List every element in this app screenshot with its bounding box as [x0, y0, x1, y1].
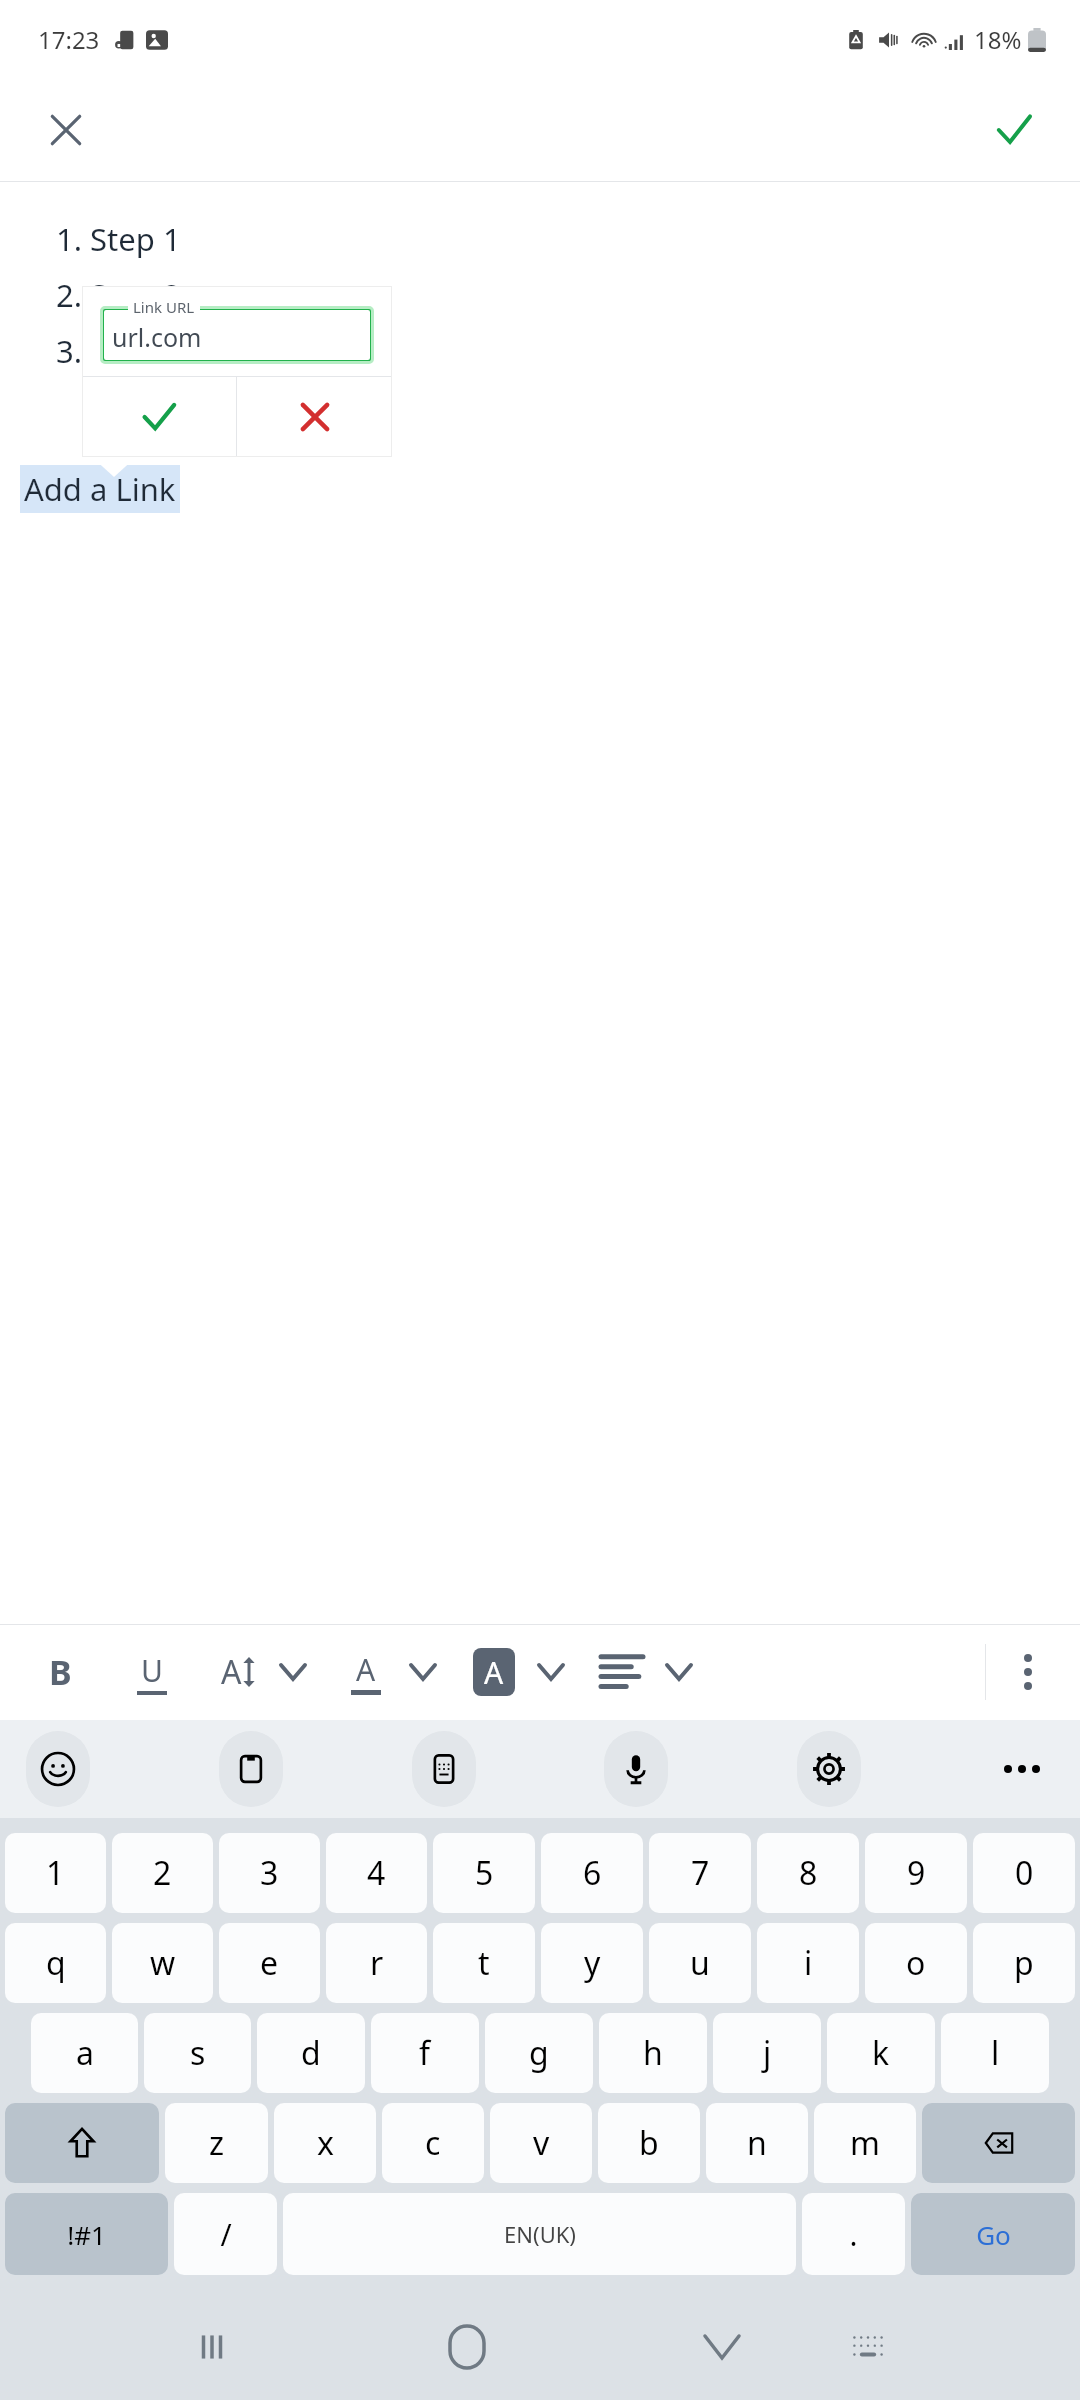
staticText: j — [763, 2031, 772, 2075]
staticText: 2 — [153, 1851, 172, 1895]
staticText: U — [141, 1650, 163, 1691]
button[interactable]: a — [31, 2013, 138, 2093]
staticText: EN(UK) — [504, 2219, 576, 2249]
button[interactable]: 3 — [219, 1833, 320, 1913]
button[interactable]: Keyboard settings — [797, 1731, 861, 1807]
button[interactable]: Expand — [534, 1642, 568, 1702]
staticText: 8 — [799, 1851, 818, 1895]
staticText: u — [690, 1941, 710, 1985]
button[interactable]: w — [112, 1923, 213, 2003]
button[interactable]: Shift — [5, 2103, 159, 2183]
button[interactable]: s — [144, 2013, 251, 2093]
button[interactable]: Underline — [126, 1637, 178, 1707]
button[interactable]: Keyboard modes — [412, 1731, 476, 1807]
button[interactable]: e — [219, 1923, 320, 2003]
staticText: s — [190, 2031, 206, 2075]
button[interactable]: 4 — [326, 1833, 427, 1913]
button[interactable]: More — [990, 1737, 1054, 1801]
button[interactable]: p — [973, 1923, 1075, 2003]
button[interactable]: 1 — [5, 1833, 106, 1913]
button[interactable]: o — [865, 1923, 967, 2003]
button[interactable]: r — [326, 1923, 427, 2003]
button[interactable]: url.com — [102, 308, 372, 362]
button[interactable]: More options — [998, 1642, 1058, 1702]
button[interactable]: c — [382, 2103, 484, 2183]
button[interactable]: Recents — [172, 2307, 252, 2387]
staticText: p — [1014, 1941, 1034, 1985]
button[interactable]: Backspace — [922, 2103, 1075, 2183]
button[interactable]: Hide keyboard — [682, 2307, 762, 2387]
button[interactable]: y — [541, 1923, 643, 2003]
staticText: r — [370, 1941, 384, 1985]
button[interactable]: t — [433, 1923, 535, 2003]
staticText: 17:23 — [38, 23, 100, 56]
button[interactable]: i — [757, 1923, 859, 2003]
button[interactable]: q — [5, 1923, 106, 2003]
button[interactable]: l — [941, 2013, 1049, 2093]
button[interactable]: !#1 — [5, 2193, 168, 2275]
staticText: 4 — [367, 1851, 386, 1895]
staticText: / — [220, 2214, 232, 2255]
staticText: m — [850, 2121, 880, 2165]
button[interactable]: 8 — [757, 1833, 859, 1913]
button[interactable]: Expand — [406, 1642, 440, 1702]
button[interactable]: Go — [911, 2193, 1075, 2275]
button[interactable]: x — [274, 2103, 376, 2183]
button[interactable]: m — [814, 2103, 916, 2183]
button[interactable]: Cancel link — [237, 377, 392, 457]
button[interactable]: j — [713, 2013, 821, 2093]
button[interactable]: 0 — [973, 1833, 1075, 1913]
button[interactable]: g — [485, 2013, 593, 2093]
staticText: q — [46, 1941, 66, 1985]
staticText: 3. Step 3 — [56, 330, 181, 372]
button[interactable]: Confirm link — [82, 377, 236, 457]
button[interactable]: h — [599, 2013, 707, 2093]
button[interactable]: Alignment — [596, 1637, 648, 1707]
button[interactable]: Switch keyboard — [828, 2307, 908, 2387]
button[interactable]: n — [706, 2103, 808, 2183]
button[interactable]: d — [257, 2013, 365, 2093]
button[interactable]: 5 — [433, 1833, 535, 1913]
button[interactable]: Home — [427, 2307, 507, 2387]
button[interactable]: Highlight — [468, 1637, 520, 1707]
staticText: i — [804, 1941, 813, 1985]
button[interactable]: b — [598, 2103, 700, 2183]
staticText: !#1 — [67, 2217, 106, 2252]
button[interactable]: EN(UK) — [283, 2193, 796, 2275]
staticText: 7 — [691, 1851, 710, 1895]
staticText: b — [639, 2121, 659, 2165]
button[interactable]: Clipboard — [219, 1731, 283, 1807]
button[interactable]: Emoji — [26, 1731, 90, 1807]
button[interactable]: f — [371, 2013, 479, 2093]
button[interactable]: 9 — [865, 1833, 967, 1913]
staticText: d — [301, 2031, 321, 2075]
staticText: g — [529, 2031, 549, 2075]
button[interactable]: Voice input — [604, 1731, 668, 1807]
button[interactable]: k — [827, 2013, 935, 2093]
staticText: . — [849, 2214, 858, 2255]
staticText: Go — [976, 2217, 1011, 2252]
button[interactable]: Close — [30, 94, 102, 166]
button[interactable]: 2 — [112, 1833, 213, 1913]
staticText: o — [906, 1941, 926, 1985]
staticText: x — [317, 2121, 334, 2165]
button[interactable]: Text size — [212, 1637, 264, 1707]
staticText: n — [747, 2121, 767, 2165]
button[interactable]: Save — [978, 94, 1050, 166]
button[interactable]: / — [174, 2193, 277, 2275]
button[interactable]: Add a Link — [24, 468, 176, 510]
button[interactable]: Text colour — [340, 1637, 392, 1707]
button[interactable]: u — [649, 1923, 751, 2003]
button[interactable]: 7 — [649, 1833, 751, 1913]
staticText: Add a Link — [24, 468, 176, 510]
button[interactable]: 6 — [541, 1833, 643, 1913]
button[interactable]: z — [165, 2103, 268, 2183]
staticText: a — [76, 2031, 94, 2075]
button[interactable]: Expand — [276, 1642, 310, 1702]
staticText: c — [425, 2121, 441, 2165]
button[interactable]: Expand — [662, 1642, 696, 1702]
button[interactable]: v — [490, 2103, 592, 2183]
button[interactable]: Bold — [34, 1637, 86, 1707]
button[interactable]: . — [802, 2193, 905, 2275]
staticText: 0 — [1015, 1851, 1034, 1895]
